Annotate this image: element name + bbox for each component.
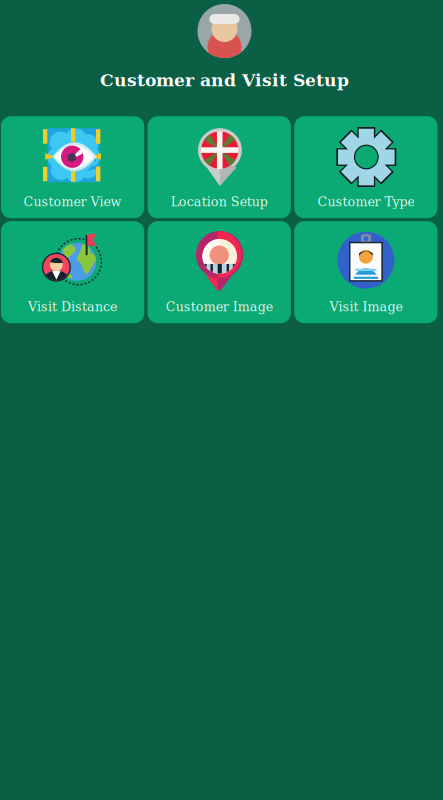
staticText: Location Setup xyxy=(171,194,268,209)
button[interactable]: Location Setup xyxy=(148,116,291,218)
staticText: Customer Image xyxy=(166,299,273,314)
button[interactable]: Visit Image xyxy=(294,221,437,323)
button[interactable]: Visit Distance xyxy=(1,221,144,323)
staticText: Visit Image xyxy=(329,299,402,314)
button[interactable]: Customer Type xyxy=(294,116,437,218)
staticText: Visit Distance xyxy=(28,299,117,314)
button[interactable]: Customer View xyxy=(1,116,144,218)
staticText: Customer and Visit Setup xyxy=(100,70,349,90)
staticText: Customer View xyxy=(24,194,122,209)
button[interactable]: Customer Image xyxy=(148,221,291,323)
staticText: Customer Type xyxy=(317,194,414,209)
